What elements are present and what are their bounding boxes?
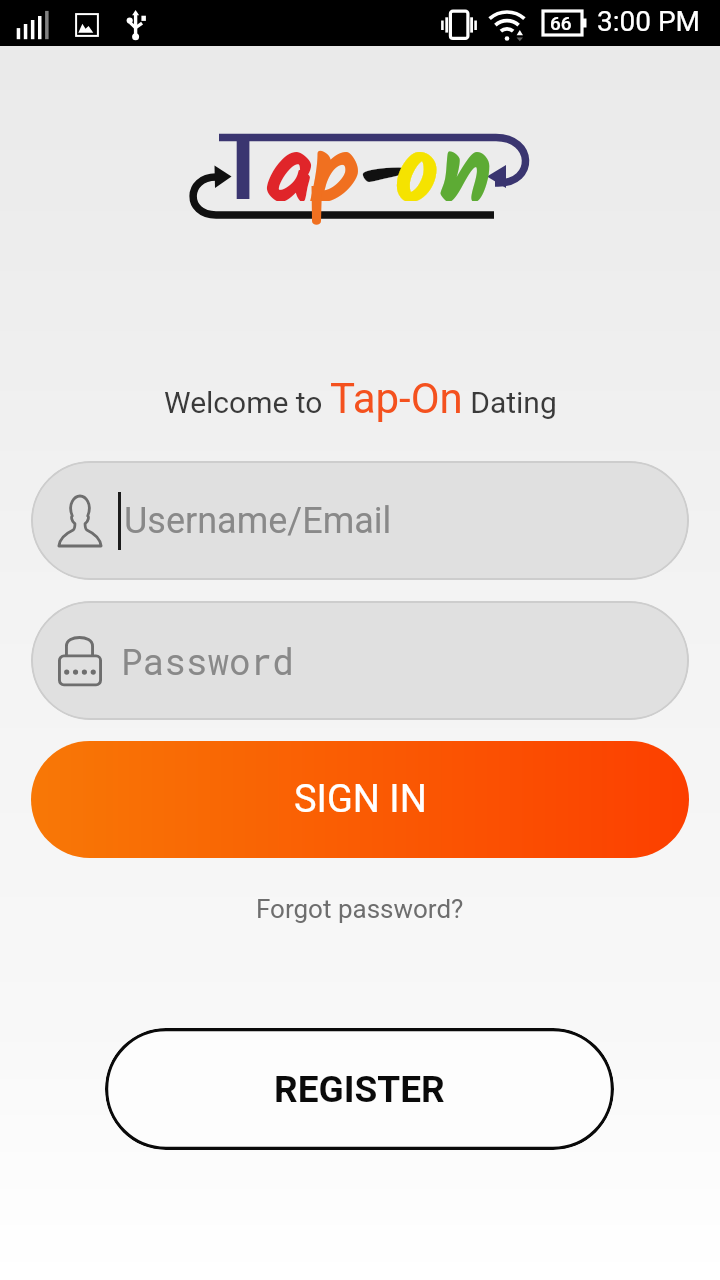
staticText: Forgot password?	[256, 894, 464, 924]
staticText: n	[439, 101, 493, 201]
staticText: SIGN IN	[294, 777, 427, 822]
other: Password	[58, 634, 102, 688]
staticText: Password	[121, 637, 294, 684]
button[interactable]: Password	[31, 601, 689, 720]
staticText: p	[309, 101, 361, 201]
staticText: -	[358, 101, 409, 201]
button[interactable]: SIGN IN	[31, 741, 689, 858]
staticText: Welcome to Tap-On Dating	[164, 374, 557, 423]
button[interactable]: REGISTER	[105, 1028, 614, 1150]
button[interactable]: Forgot password?	[246, 888, 474, 930]
staticText: 66	[550, 12, 572, 34]
staticText: a	[265, 101, 314, 201]
staticText: 3:00 PM	[597, 5, 701, 38]
button[interactable]: User name	[31, 461, 689, 580]
staticText: Username/Email	[124, 500, 392, 542]
staticText: REGISTER	[274, 1068, 445, 1111]
staticText: o	[395, 101, 439, 201]
other: User name	[58, 496, 102, 546]
